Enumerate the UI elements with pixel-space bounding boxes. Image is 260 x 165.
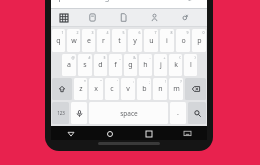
staticText: # (88, 55, 91, 60)
button[interactable]: Recents (143, 128, 154, 139)
staticText: 5 (122, 30, 125, 35)
button[interactable]: Home (104, 128, 115, 139)
button[interactable]: Shift (52, 78, 72, 100)
staticText: u (149, 36, 154, 46)
staticText: 9 (186, 30, 189, 35)
staticText: v (126, 84, 130, 94)
staticText: k (174, 60, 178, 70)
staticText: ! (165, 79, 166, 84)
button[interactable]: Send message (51, 0, 207, 8)
staticText: ? (180, 79, 182, 84)
button[interactable]: Files (108, 9, 139, 26)
staticText: $ (103, 55, 106, 60)
button[interactable]: 6 (128, 29, 142, 52)
button[interactable]: ! (153, 78, 167, 100)
staticText: 0 (202, 30, 205, 35)
button[interactable]: 7 (144, 29, 158, 52)
button[interactable]: Search (188, 102, 206, 124)
button[interactable]: + (154, 54, 167, 76)
button[interactable]: Send (186, 0, 200, 4)
staticText: n (158, 84, 163, 94)
staticText: p (197, 36, 202, 46)
button[interactable]: & (124, 54, 137, 76)
staticText: r (102, 36, 105, 46)
button[interactable]: * (74, 78, 87, 100)
staticText: space (120, 109, 138, 118)
button[interactable]: Voice input (71, 102, 87, 124)
staticText: 7 (154, 30, 157, 35)
staticText: 3 (91, 30, 94, 35)
staticText: z (79, 84, 83, 94)
button[interactable]: ? (169, 78, 183, 100)
staticText: w (71, 36, 77, 46)
staticText: * (84, 79, 86, 84)
button[interactable]: Contacts (139, 9, 170, 26)
staticText: . (177, 108, 179, 118)
staticText: l (190, 60, 192, 70)
staticText: ( (179, 55, 181, 60)
button[interactable]: # (78, 54, 92, 76)
button[interactable]: 123 (52, 102, 69, 124)
staticText: Send message (62, 0, 114, 2)
button[interactable]: $ (94, 54, 107, 76)
button[interactable]: ( (169, 54, 182, 76)
staticText: s (83, 60, 87, 70)
button[interactable]: " (89, 78, 103, 100)
staticText: f (114, 60, 117, 70)
button[interactable]: _ (109, 54, 122, 76)
staticText: a (67, 60, 71, 70)
staticText: j (160, 60, 162, 70)
button[interactable]: space (89, 102, 168, 124)
staticText: _ (119, 55, 121, 60)
button[interactable]: Backspace (185, 78, 206, 100)
button[interactable]: Back (65, 128, 76, 139)
staticText: @ (71, 55, 75, 60)
button[interactable]: 9 (176, 29, 190, 52)
staticText: 2 (76, 30, 79, 35)
staticText: h (143, 60, 148, 70)
staticText: i (166, 36, 168, 46)
staticText: ' (117, 79, 118, 84)
staticText: y (133, 36, 137, 46)
button[interactable]: ' (105, 78, 119, 100)
staticText: : (133, 79, 134, 84)
staticText: 4 (106, 30, 109, 35)
button[interactable]: : (121, 78, 135, 100)
staticText: m (173, 84, 180, 94)
button[interactable]: 8 (160, 29, 174, 52)
button[interactable]: Hide keyboard (182, 128, 193, 139)
staticText: - (149, 55, 151, 60)
button[interactable]: @ (62, 54, 76, 76)
button[interactable]: 5 (112, 29, 126, 52)
staticText: g (128, 60, 133, 70)
button[interactable]: - (139, 54, 152, 76)
button[interactable]: ; (137, 78, 151, 100)
button[interactable]: . (170, 102, 186, 124)
staticText: b (142, 84, 147, 94)
staticText: o (181, 36, 186, 46)
button[interactable]: 2 (67, 29, 80, 52)
staticText: 8 (170, 30, 173, 35)
staticText: d (98, 60, 103, 70)
staticText: + (163, 55, 166, 60)
staticText: & (133, 55, 136, 60)
button[interactable]: 3 (82, 29, 95, 52)
button[interactable]: ) (184, 54, 197, 76)
staticText: ) (194, 55, 196, 60)
staticText: 1 (61, 30, 64, 35)
button[interactable]: Emoji (170, 9, 201, 26)
staticText: x (94, 84, 98, 94)
staticText: ; (149, 79, 150, 84)
staticText: e (87, 36, 91, 46)
button[interactable]: Apps (51, 9, 77, 26)
staticText: " (100, 79, 102, 84)
button[interactable]: 1 (52, 29, 65, 52)
button[interactable]: 4 (97, 29, 110, 52)
staticText: q (56, 36, 61, 46)
button[interactable]: Stickers (77, 9, 108, 26)
staticText: 123 (57, 110, 65, 116)
staticText: 6 (138, 30, 141, 35)
staticText: c (110, 84, 114, 94)
button[interactable]: 0 (192, 29, 206, 52)
staticText: t (118, 36, 121, 46)
